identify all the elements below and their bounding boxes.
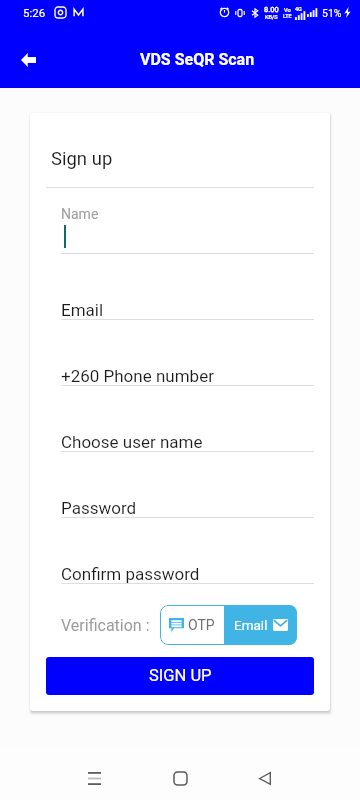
staticText: Choose user name [61,432,203,452]
staticText: Email [234,617,268,633]
staticText: +260 Phone number [61,366,214,386]
staticText: 4G [295,6,302,12]
staticText: Vo [284,7,291,13]
staticText: VDS SeQR Scan [140,50,255,69]
staticText: Email [61,300,104,320]
staticText: Verification : [61,616,150,635]
staticText: Password [61,498,137,518]
staticText: 5:26 [23,6,46,19]
button[interactable]: OTP [160,605,224,645]
button[interactable]: Back [243,756,287,800]
staticText: KB/S [265,14,278,20]
button[interactable]: Home [158,756,202,800]
button[interactable]: Email [224,605,297,645]
staticText: Sign up [51,148,113,170]
staticText: Confirm password [61,564,200,584]
button[interactable]: Recent apps [72,756,116,800]
staticText: 8.00 [264,5,279,14]
staticText: 51% [322,7,342,19]
staticText: SIGN UP [149,666,212,685]
button[interactable]: SIGN UP [46,657,314,695]
staticText: LTE [283,13,292,19]
button[interactable]: Back [10,42,46,78]
staticText: Name [61,206,99,222]
staticText: OTP [188,617,215,633]
